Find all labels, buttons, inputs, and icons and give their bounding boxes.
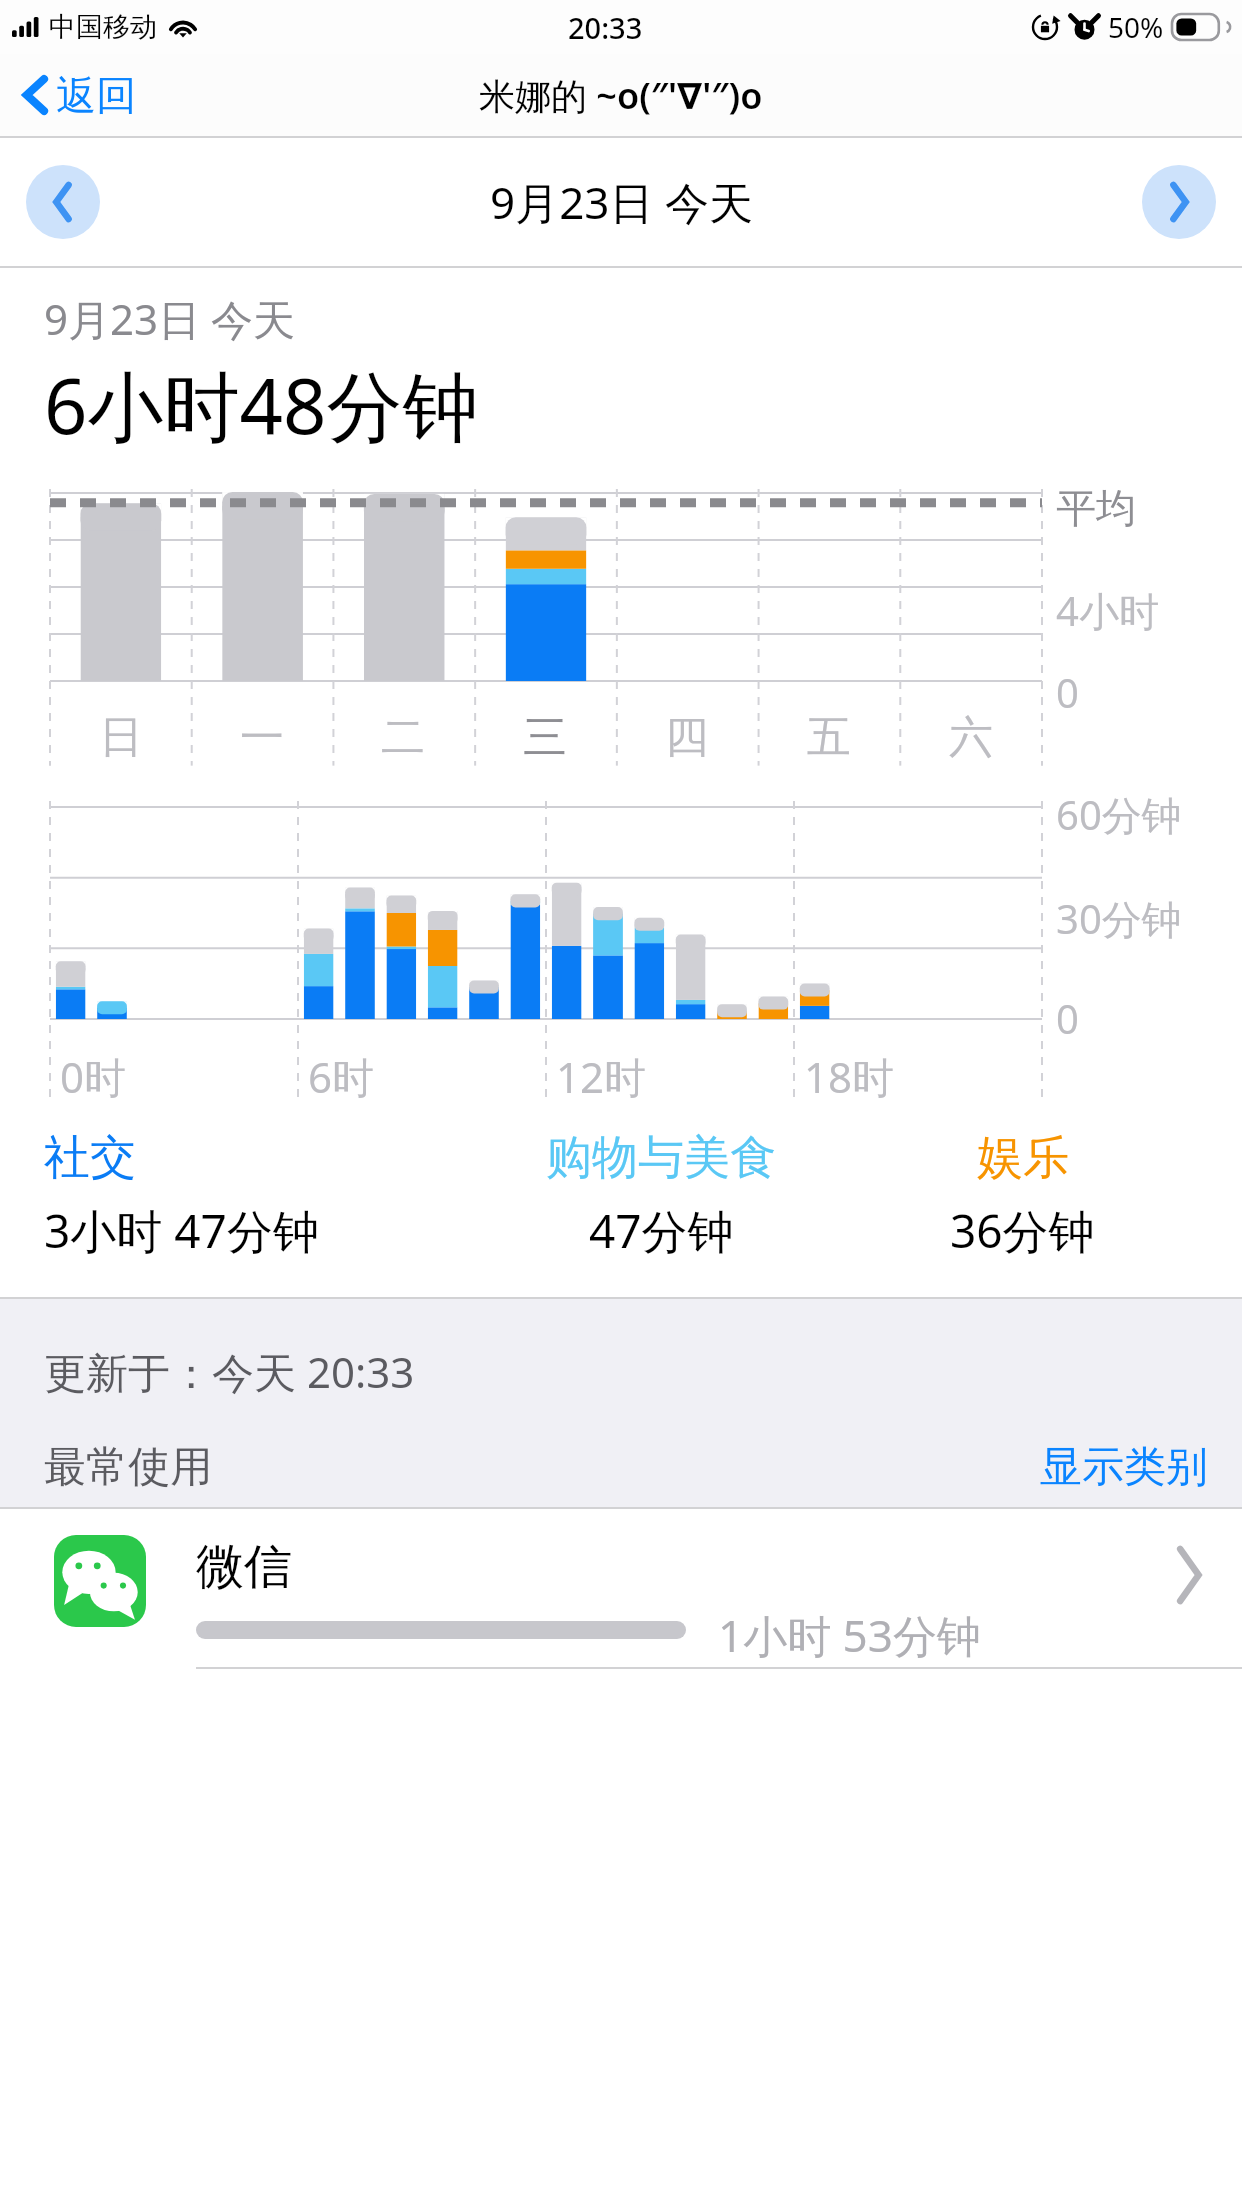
staticText: 米娜的 ~o(″'∇'″)o	[479, 71, 763, 120]
button[interactable]: 微信	[0, 1509, 1242, 1669]
staticText: 4小时	[1056, 583, 1159, 638]
staticText: 显示类别	[1040, 1441, 1208, 1494]
staticText: 中国移动	[49, 10, 157, 44]
staticText: 日	[99, 710, 143, 765]
staticText: 20:33	[568, 8, 643, 47]
staticText: 9月23日 今天	[490, 172, 753, 232]
staticText: 二	[381, 710, 425, 765]
staticText: 四	[665, 710, 709, 765]
staticText: 0	[1056, 665, 1079, 719]
staticText: 娱乐	[977, 1129, 1069, 1187]
button[interactable]: 返回	[0, 62, 150, 128]
staticText: 1小时 53分钟	[718, 1605, 981, 1665]
staticText: 50%	[1108, 8, 1164, 46]
staticText: 六	[949, 710, 993, 765]
staticText: 9月23日 今天	[44, 290, 295, 347]
staticText: 更新于：今天 20:33	[44, 1343, 415, 1400]
staticText: 0时	[60, 1048, 127, 1105]
staticText: 一	[240, 710, 284, 765]
button[interactable]: Next day	[1142, 165, 1216, 239]
staticText: 3小时 47分钟	[44, 1199, 319, 1262]
staticText: 30分钟	[1056, 891, 1182, 946]
staticText: 6小时48分钟	[44, 353, 479, 457]
other: Details	[1174, 1549, 1202, 1601]
staticText: 47分钟	[589, 1199, 734, 1262]
staticText: 18时	[804, 1048, 895, 1105]
staticText: 五	[807, 710, 851, 765]
staticText: 6时	[308, 1048, 375, 1105]
staticText: 12时	[556, 1048, 647, 1105]
staticText: 购物与美食	[546, 1129, 776, 1187]
staticText: 返回	[56, 70, 136, 120]
button[interactable]: Previous day	[26, 165, 100, 239]
staticText: 微信	[196, 1537, 292, 1597]
button[interactable]: 显示类别	[1006, 1433, 1242, 1502]
staticText: 0	[1056, 991, 1079, 1045]
staticText: 社交	[44, 1129, 136, 1187]
staticText: 60分钟	[1056, 787, 1182, 842]
staticText: 平均	[1056, 483, 1136, 533]
staticText: 三	[523, 710, 567, 765]
staticText: 最常使用	[44, 1441, 212, 1494]
staticText: 36分钟	[950, 1199, 1095, 1262]
